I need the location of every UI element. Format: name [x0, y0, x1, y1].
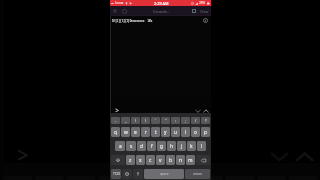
staticText: Console: [153, 9, 167, 14]
button[interactable]: Shift: [111, 155, 125, 165]
button[interactable]: Help: [120, 7, 128, 15]
staticText: w: [124, 129, 128, 136]
button[interactable]: (: [131, 117, 140, 124]
staticText: l: [201, 143, 203, 150]
button[interactable]: z: [126, 155, 135, 165]
button[interactable]: :: [171, 117, 180, 124]
button[interactable]: r: [141, 127, 150, 137]
button[interactable]: y: [161, 127, 170, 137]
staticText: /: [195, 118, 197, 123]
button[interactable]: d: [137, 141, 146, 151]
staticText: ": [165, 118, 167, 123]
staticText: r: [145, 129, 147, 136]
button[interactable]: h: [167, 141, 176, 151]
button[interactable]: Previous command: [194, 107, 202, 115]
button[interactable]: Previous command: [267, 144, 292, 169]
button[interactable]: g: [157, 141, 166, 151]
staticText: j: [181, 143, 183, 150]
button[interactable]: t: [151, 127, 160, 137]
button[interactable]: x: [136, 155, 145, 165]
button[interactable]: /: [191, 117, 200, 124]
staticText: a: [119, 143, 122, 150]
button[interactable]: ': [151, 117, 160, 124]
staticText: y: [164, 129, 167, 136]
button[interactable]: o: [191, 127, 200, 137]
staticText: (: [135, 118, 137, 123]
button[interactable]: ": [161, 117, 170, 124]
staticText: x: [139, 157, 142, 164]
button[interactable]: space: [144, 169, 184, 179]
button[interactable]: i: [181, 127, 190, 137]
button[interactable]: c: [146, 155, 155, 165]
staticText: n: [179, 157, 182, 164]
button[interactable]: ": [162, 176, 191, 180]
button[interactable]: m: [186, 155, 195, 165]
staticText: f: [151, 143, 153, 150]
staticText: :: [175, 118, 177, 123]
staticText: Inova: [115, 1, 124, 5]
button[interactable]: Console: [152, 8, 170, 15]
button[interactable]: l: [197, 141, 206, 151]
button[interactable]: w: [121, 127, 130, 137]
button[interactable]: Info: [202, 17, 209, 24]
staticText: h: [170, 143, 173, 150]
staticText: z: [129, 157, 132, 164]
staticText: ?123: [113, 172, 120, 176]
button[interactable]: p: [201, 127, 210, 137]
button[interactable]: e: [131, 127, 140, 137]
staticText: >: [16, 141, 32, 172]
button[interactable]: Auto scroll: [190, 7, 198, 15]
button[interactable]: Voice input: [133, 169, 143, 179]
button[interactable]: return: [185, 169, 210, 179]
button[interactable]: Switch language: [122, 169, 132, 179]
staticText: 25%: [199, 1, 206, 5]
button[interactable]: ): [141, 117, 150, 124]
staticText: ): [145, 118, 147, 123]
button[interactable]: j: [177, 141, 186, 151]
button[interactable]: b: [166, 155, 175, 165]
staticText: _: [125, 118, 127, 123]
staticText: 2:29 AM: [154, 1, 169, 6]
button[interactable]: ?: [201, 117, 210, 124]
button[interactable]: Menu: [111, 7, 119, 15]
button[interactable]: s: [126, 141, 136, 151]
button[interactable]: q: [111, 127, 120, 137]
staticText: ;: [185, 118, 187, 123]
staticText: m: [188, 157, 193, 164]
button[interactable]: k: [187, 141, 196, 151]
button[interactable]: -: [111, 117, 120, 124]
button[interactable]: ): [99, 176, 127, 180]
button[interactable]: _: [121, 117, 130, 124]
button[interactable]: Clear: [199, 7, 210, 16]
button[interactable]: n: [176, 155, 185, 165]
button[interactable]: ;: [181, 117, 190, 124]
button[interactable]: ': [130, 176, 159, 180]
staticText: k: [190, 143, 193, 150]
button[interactable]: Next command: [202, 107, 210, 115]
staticText: -: [115, 118, 117, 123]
staticText: ': [155, 118, 156, 123]
button[interactable]: a: [115, 141, 125, 151]
button[interactable]: ?123: [111, 169, 121, 179]
button[interactable]: :: [194, 176, 222, 180]
button[interactable]: Next command: [292, 144, 317, 169]
staticText: D/[1][1][1]Dxxxxxxxx 10s: [112, 19, 153, 23]
staticText: d: [140, 143, 143, 150]
button[interactable]: u: [171, 127, 180, 137]
button[interactable]: f: [147, 141, 156, 151]
button[interactable]: v: [156, 155, 165, 165]
staticText: b: [169, 157, 172, 164]
staticText: q: [114, 129, 117, 136]
button[interactable]: Backspace: [196, 155, 210, 165]
